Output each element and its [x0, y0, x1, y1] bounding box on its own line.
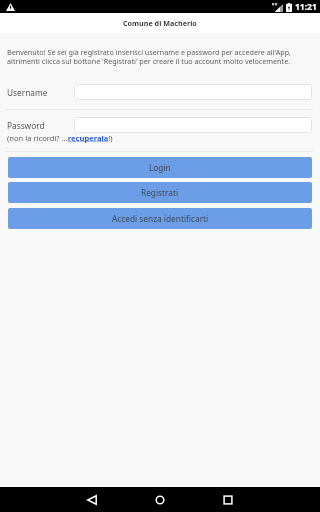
button[interactable]: Accedi senza identificarti [8, 208, 312, 229]
button[interactable]: Comune di Macherio [0, 0, 320, 33]
staticText: Username [7, 87, 48, 98]
button[interactable]: Recent apps [208, 487, 248, 512]
button[interactable]: Registrati [8, 182, 312, 203]
staticText: Benvenuto! Se sei già registrato inseris… [7, 47, 313, 66]
button[interactable]: Password [74, 117, 312, 133]
button[interactable]: Back [72, 487, 112, 512]
button[interactable]: Username [74, 84, 312, 100]
staticText: Comune di Macherio [123, 18, 197, 28]
staticText: Password [7, 120, 45, 131]
button[interactable]: (non la ricordi? ...recuperala!) [7, 133, 113, 143]
staticText: Accedi senza identificarti [112, 213, 209, 224]
button[interactable]: Login [8, 157, 312, 178]
staticText: 11:21 [295, 1, 317, 13]
staticText: (non la ricordi? ...recuperala!) [7, 133, 113, 143]
staticText: Registrati [141, 187, 179, 198]
staticText: Login [149, 162, 171, 173]
button[interactable]: Home [140, 487, 180, 512]
